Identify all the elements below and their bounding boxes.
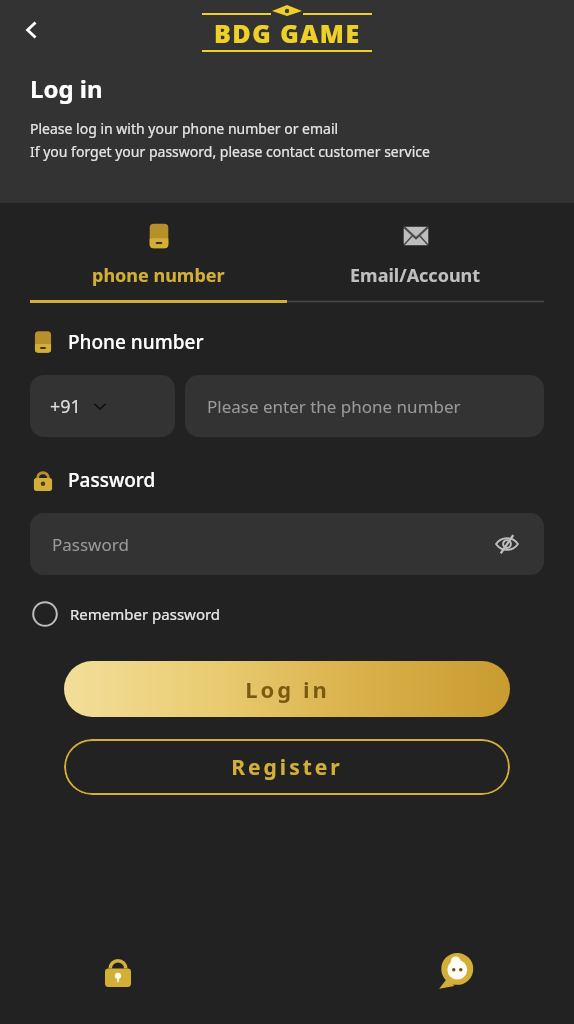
button[interactable]: Password [30, 513, 544, 575]
staticText: Please enter the phone number [207, 395, 461, 418]
staticText: Log in [245, 674, 330, 704]
staticText: Password [68, 467, 156, 493]
button[interactable]: Email/Account [287, 221, 544, 288]
button[interactable]: Customer service [428, 943, 484, 999]
staticText: Log in [30, 72, 103, 105]
button[interactable]: Back [8, 6, 56, 54]
staticText: Email/Account [350, 263, 481, 288]
button[interactable]: Forgot password [90, 943, 146, 999]
button[interactable]: Show password [492, 529, 522, 559]
button[interactable]: phone number [30, 221, 287, 288]
button[interactable]: Remember password [30, 597, 223, 631]
staticText: Phone number [68, 329, 204, 355]
staticText: BDG GAME [214, 16, 361, 50]
staticText: Register [231, 753, 343, 782]
staticText: Please log in with your phone number or … [30, 119, 339, 138]
staticText: +91 [50, 394, 81, 419]
staticText: Password [52, 533, 492, 556]
staticText: phone number [92, 263, 225, 288]
button[interactable]: Please enter the phone number [185, 375, 544, 437]
staticText: If you forget your password, please cont… [30, 142, 430, 161]
button[interactable]: +91 [30, 375, 175, 437]
button[interactable]: Register [64, 739, 510, 795]
staticText: Remember password [70, 604, 221, 624]
button[interactable]: Log in [64, 661, 510, 717]
